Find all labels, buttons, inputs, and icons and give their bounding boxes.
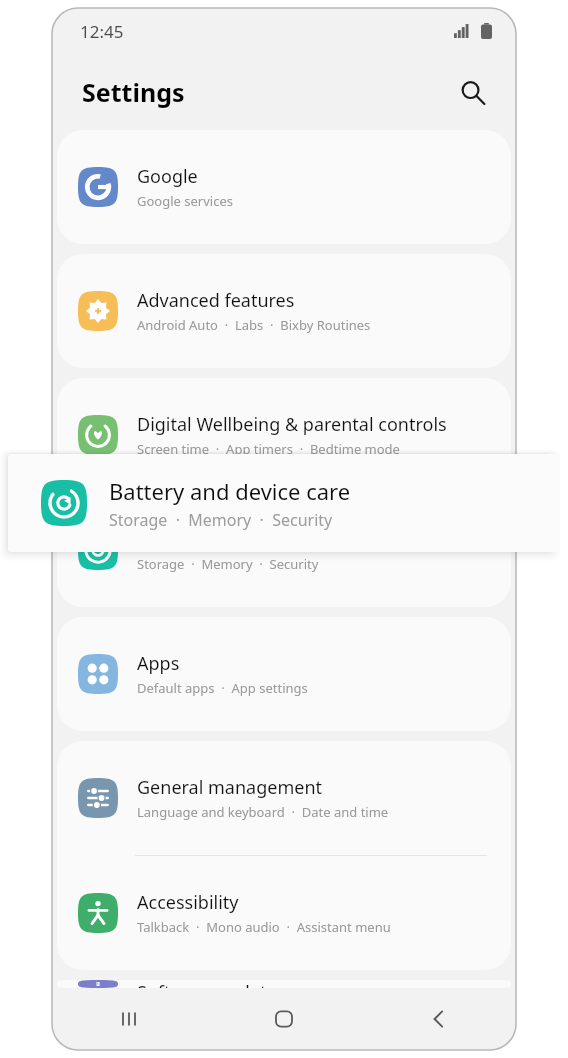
staticText: Apps (137, 651, 180, 676)
button[interactable]: Battery and device care (8, 454, 560, 552)
button[interactable]: Software update (57, 980, 511, 988)
button[interactable]: General management (57, 741, 511, 855)
staticText: Google (137, 164, 198, 189)
staticText: Digital Wellbeing & parental controls (137, 412, 447, 437)
staticText: 12:45 (80, 20, 124, 43)
staticText: Android Auto · Labs · Bixby Routines (137, 316, 371, 334)
staticText: Advanced features (137, 288, 295, 313)
staticText: Talkback · Mono audio · Assistant menu (137, 918, 391, 936)
staticText: Storage · Memory · Security (109, 509, 333, 531)
staticText: Storage · Memory · Security (137, 555, 319, 573)
staticText: Accessibility (137, 890, 239, 915)
staticText: Google services (137, 192, 233, 210)
staticText: Battery and device care (137, 527, 335, 552)
button[interactable]: Battery and device care (57, 493, 511, 607)
button[interactable]: Google (57, 130, 511, 244)
button[interactable]: Advanced features (57, 254, 511, 368)
staticText: Software update (137, 980, 277, 988)
staticText: General management (137, 775, 323, 800)
staticText: Settings (82, 75, 185, 109)
button[interactable]: Apps (57, 617, 511, 731)
staticText: Battery and device care (109, 476, 351, 506)
button[interactable]: Digital Wellbeing & parental controls (57, 378, 511, 492)
staticText: Screen time · App timers · Bedtime mode (137, 440, 400, 458)
button[interactable]: Accessibility (57, 856, 511, 970)
staticText: Default apps · App settings (137, 679, 308, 697)
button[interactable]: Back (361, 988, 516, 1050)
staticText: Language and keyboard · Date and time (137, 803, 389, 821)
button[interactable]: Search (454, 74, 490, 110)
button[interactable]: Home (206, 988, 361, 1050)
button[interactable]: Recent apps (52, 988, 206, 1050)
